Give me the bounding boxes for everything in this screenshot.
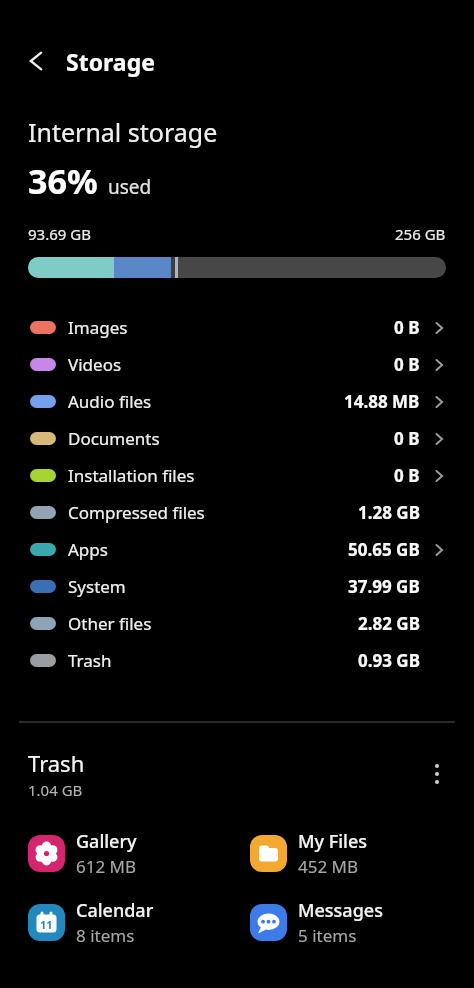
button[interactable]: Images <box>0 309 474 346</box>
staticText: 50.65 GB <box>348 538 420 561</box>
staticText: 14.88 MB <box>344 390 420 413</box>
staticText: 0 B <box>394 316 420 339</box>
staticText: 452 MB <box>298 855 359 878</box>
staticText: Other files <box>68 612 152 635</box>
button[interactable] <box>421 758 453 790</box>
staticText: 11 <box>40 917 53 932</box>
staticText: 256 GB <box>395 224 446 244</box>
staticText: Compressed files <box>68 501 205 524</box>
button[interactable]: Videos <box>0 346 474 383</box>
staticText: Images <box>68 316 128 339</box>
button[interactable]: Compressed files <box>0 494 474 531</box>
button[interactable]: Documents <box>0 420 474 457</box>
button[interactable]: Other files <box>0 605 474 642</box>
staticText: Audio files <box>68 390 152 413</box>
staticText: Gallery <box>76 829 137 854</box>
staticText: Apps <box>68 538 108 561</box>
staticText: 0 B <box>394 427 420 450</box>
staticText: Videos <box>68 353 122 376</box>
staticText: Storage <box>66 46 155 77</box>
button[interactable] <box>26 41 66 81</box>
staticText: Internal storage <box>28 115 218 149</box>
staticText: Installation files <box>68 464 195 487</box>
button[interactable]: Messages <box>250 898 383 947</box>
staticText: Trash <box>28 748 85 778</box>
staticText: System <box>68 575 126 598</box>
staticText: 1.28 GB <box>358 501 420 524</box>
staticText: 1.04 GB <box>28 780 83 800</box>
button[interactable]: Audio files <box>0 383 474 420</box>
button[interactable]: Installation files <box>0 457 474 494</box>
staticText: 0.93 GB <box>358 649 420 672</box>
button[interactable]: Apps <box>0 531 474 568</box>
staticText: Calendar <box>76 898 154 923</box>
staticText: 5 items <box>298 924 357 947</box>
staticText: Messages <box>298 898 383 923</box>
staticText: 0 B <box>394 353 420 376</box>
staticText: 0 B <box>394 464 420 487</box>
staticText: Documents <box>68 427 160 450</box>
button[interactable]: My Files <box>250 829 368 878</box>
button[interactable]: 11 <box>28 898 154 947</box>
staticText: 93.69 GB <box>28 224 91 244</box>
staticText: 36% <box>28 158 98 204</box>
button[interactable]: Gallery <box>28 829 137 878</box>
staticText: 8 items <box>76 924 135 947</box>
button[interactable]: Trash <box>0 642 474 679</box>
staticText: My Files <box>298 829 368 854</box>
button[interactable]: System <box>0 568 474 605</box>
staticText: 37.99 GB <box>348 575 420 598</box>
staticText: 2.82 GB <box>358 612 420 635</box>
staticText: 612 MB <box>76 855 137 878</box>
staticText: Trash <box>68 649 112 672</box>
staticText: used <box>108 174 152 200</box>
